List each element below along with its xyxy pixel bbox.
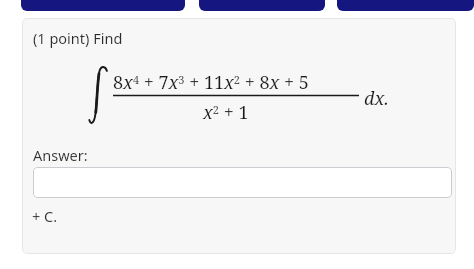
staticText: dx. [364, 86, 389, 111]
button[interactable]: Next problem [337, 0, 474, 11]
button[interactable]: Problem list [199, 0, 325, 11]
button[interactable]: Previous problem [21, 0, 185, 11]
staticText: 8x4 + 7x3 + 11x2 + 8x + 5 [113, 70, 309, 95]
staticText: (1 point) Find [33, 28, 123, 48]
button[interactable]: Answer input field [33, 167, 452, 198]
staticText: Answer: [33, 145, 88, 165]
staticText: x2 + 1 [203, 100, 249, 125]
staticText: + C. [32, 206, 58, 226]
